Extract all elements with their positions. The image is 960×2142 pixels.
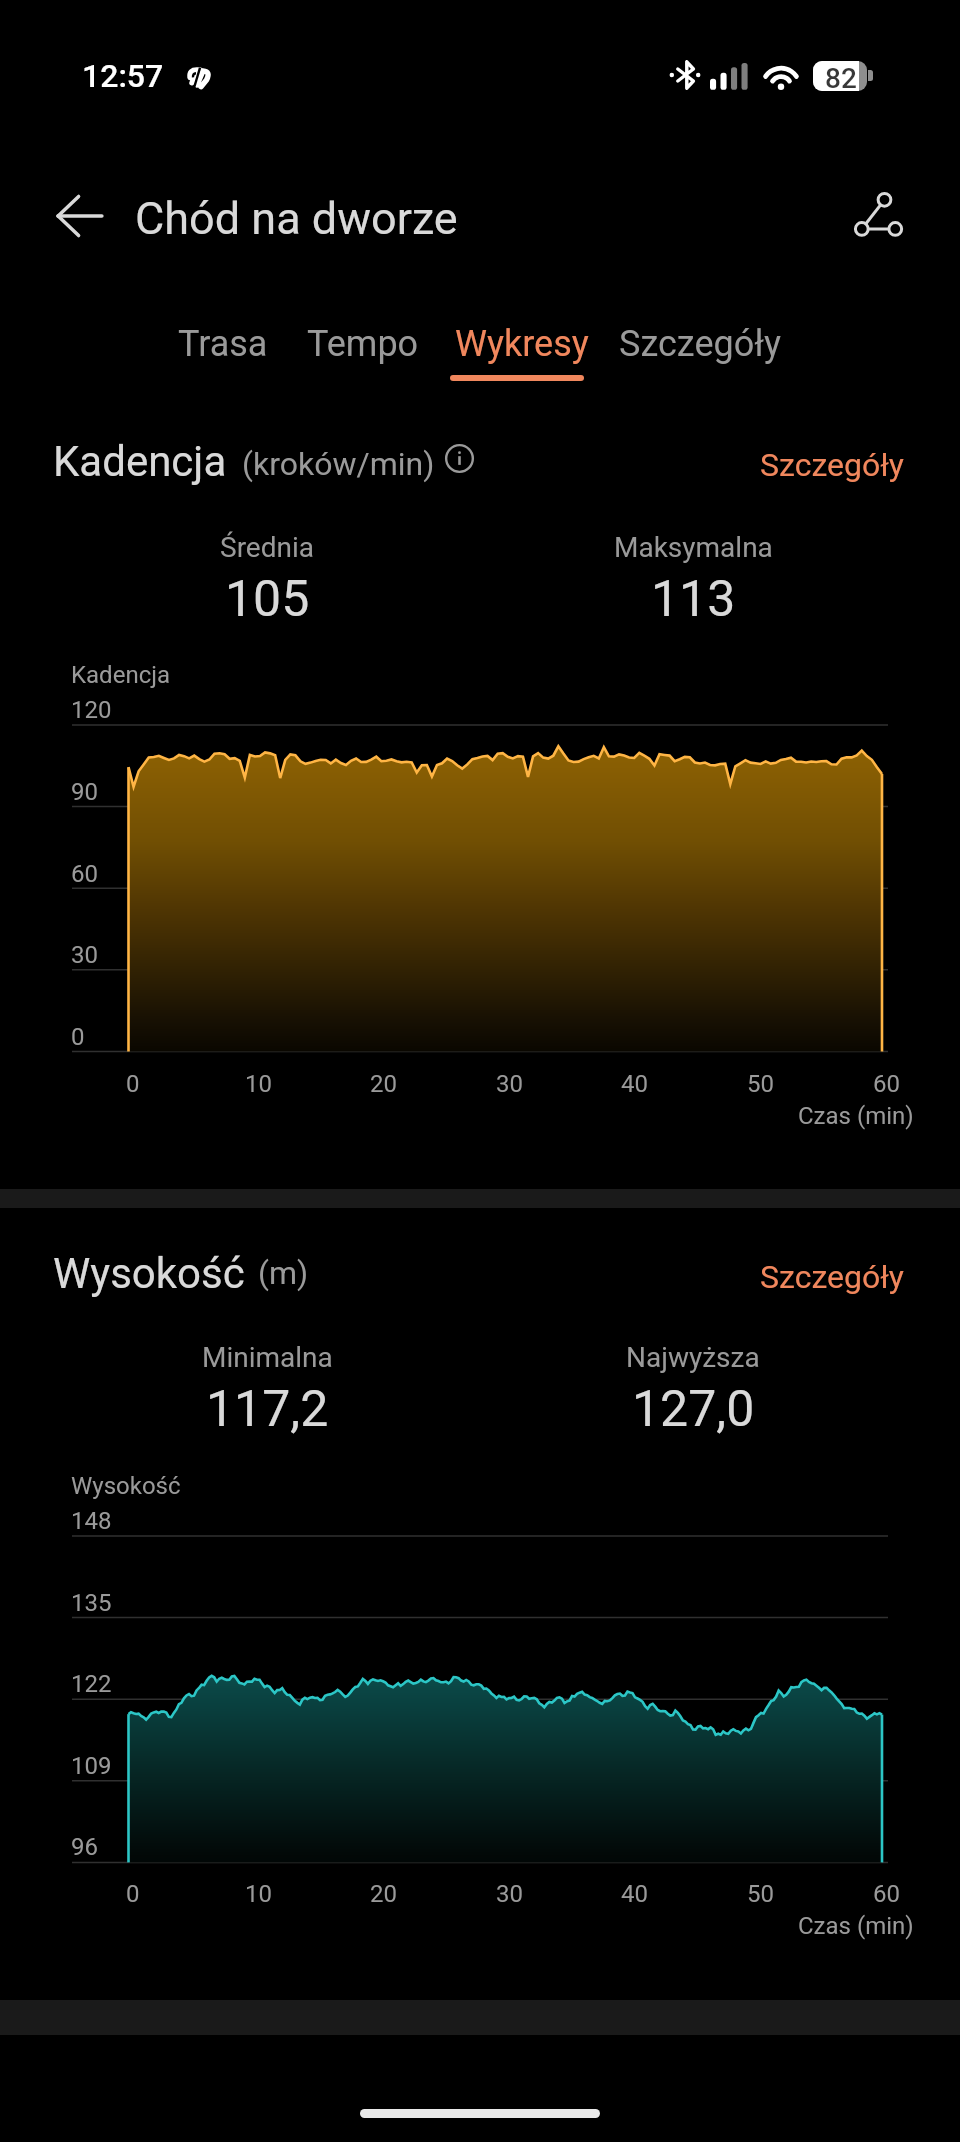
- staticText: 30: [496, 1070, 523, 1098]
- staticText: (m): [258, 1254, 309, 1292]
- staticText: Szczegóły: [760, 1258, 904, 1296]
- staticText: 148: [71, 1507, 112, 1535]
- button[interactable]: Szczegóły: [744, 435, 920, 491]
- staticText: 30: [496, 1880, 523, 1908]
- button[interactable]: Tempo: [287, 306, 435, 384]
- staticText: 0: [71, 1023, 85, 1051]
- staticText: 0: [126, 1070, 140, 1098]
- staticText: Średnia: [220, 531, 314, 564]
- staticText: 90: [71, 778, 98, 806]
- staticText: 40: [621, 1880, 648, 1908]
- staticText: 60: [873, 1070, 900, 1098]
- staticText: Wykresy: [455, 323, 589, 365]
- staticText: Czas (min): [798, 1912, 914, 1940]
- staticText: 96: [71, 1833, 98, 1861]
- staticText: 120: [71, 696, 112, 724]
- staticText: 20: [370, 1880, 397, 1908]
- staticText: 127,0: [632, 1380, 755, 1439]
- staticText: Kadencja: [53, 437, 227, 486]
- staticText: Szczegóły: [760, 446, 904, 484]
- staticText: Najwyższa: [626, 1341, 760, 1374]
- staticText: 105: [225, 570, 310, 629]
- button[interactable]: Back: [44, 180, 116, 252]
- staticText: Trasa: [178, 323, 268, 365]
- staticText: 10: [245, 1070, 272, 1098]
- staticText: 109: [71, 1752, 112, 1780]
- button[interactable]: Share: [842, 180, 914, 252]
- staticText: 0: [126, 1880, 140, 1908]
- staticText: Maksymalna: [614, 531, 773, 564]
- staticText: Szczegóły: [619, 323, 781, 365]
- staticText: 122: [71, 1670, 112, 1698]
- staticText: (kroków/min): [242, 445, 435, 483]
- staticText: 117,2: [206, 1380, 329, 1439]
- staticText: Wysokość: [53, 1249, 245, 1298]
- staticText: 113: [651, 570, 736, 629]
- staticText: Chód na dworze: [135, 192, 458, 245]
- staticText: 50: [747, 1880, 774, 1908]
- staticText: Kadencja: [71, 661, 170, 689]
- button[interactable]: Wykresy: [435, 306, 607, 384]
- staticText: 20: [370, 1070, 397, 1098]
- staticText: Wysokość: [71, 1472, 181, 1500]
- staticText: 40: [621, 1070, 648, 1098]
- staticText: 12:57: [82, 57, 164, 95]
- button[interactable]: Szczegóły: [744, 1247, 920, 1303]
- staticText: 10: [245, 1880, 272, 1908]
- staticText: Tempo: [307, 323, 419, 365]
- staticText: 30: [71, 941, 98, 969]
- staticText: 135: [71, 1589, 112, 1617]
- staticText: 60: [71, 860, 98, 888]
- staticText: Minimalna: [202, 1341, 333, 1374]
- staticText: 60: [873, 1880, 900, 1908]
- button[interactable]: Trasa: [158, 306, 285, 384]
- button[interactable]: Szczegóły: [599, 306, 803, 384]
- staticText: 50: [747, 1070, 774, 1098]
- staticText: 82: [825, 62, 857, 92]
- staticText: Czas (min): [798, 1102, 914, 1130]
